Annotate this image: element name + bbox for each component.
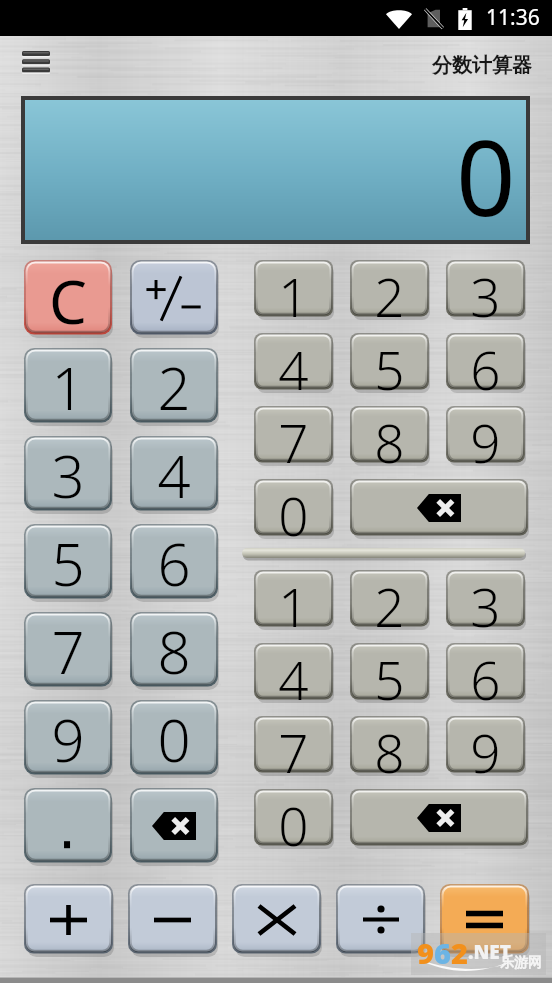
button[interactable]: 2 <box>130 348 218 424</box>
button[interactable]: 0 <box>130 700 218 776</box>
staticText: 8 <box>157 612 191 688</box>
button[interactable]: 0 <box>254 479 333 537</box>
staticText: 9 <box>417 933 434 972</box>
staticText: 3 <box>51 436 85 512</box>
button[interactable]: 9 <box>446 716 525 774</box>
staticText: 9 <box>470 716 501 774</box>
button[interactable]: Plus minus <box>130 260 218 336</box>
staticText: 3 <box>470 570 501 628</box>
staticText: 7 <box>278 406 309 464</box>
button[interactable]: Plus <box>24 884 113 955</box>
staticText: 4 <box>157 436 191 512</box>
staticText: 9 <box>51 700 85 776</box>
button[interactable]: Equals <box>440 884 529 955</box>
staticText: 1 <box>51 348 85 424</box>
button[interactable]: 9 <box>24 700 112 776</box>
button[interactable]: 5 <box>350 643 429 701</box>
button[interactable]: 8 <box>130 612 218 688</box>
staticText: 5 <box>374 333 405 391</box>
button[interactable]: 3 <box>24 436 112 512</box>
button[interactable]: 3 <box>446 260 525 318</box>
button[interactable]: 5 <box>350 333 429 391</box>
staticText: 0 <box>278 789 309 847</box>
button[interactable]: Delete <box>130 788 218 864</box>
button[interactable]: 4 <box>254 333 333 391</box>
staticText: 5 <box>374 643 405 701</box>
staticText: 11:36 <box>486 3 540 32</box>
button[interactable]: 6 <box>446 333 525 391</box>
staticText: 6 <box>157 524 191 600</box>
button[interactable]: 8 <box>350 716 429 774</box>
staticText: C <box>49 260 87 336</box>
button[interactable]: Delete <box>350 479 528 537</box>
button[interactable]: 7 <box>24 612 112 688</box>
button[interactable]: 6 <box>130 524 218 600</box>
staticText: 0 <box>157 700 191 776</box>
staticText: 2 <box>451 933 468 972</box>
staticText: 6 <box>470 333 501 391</box>
staticText: 8 <box>374 716 405 774</box>
button[interactable]: C <box>24 260 112 336</box>
staticText: 4 <box>278 643 309 701</box>
button[interactable]: 9 <box>446 406 525 464</box>
staticText: 0 <box>456 105 516 247</box>
button[interactable]: 6 <box>446 643 525 701</box>
staticText: 2 <box>374 570 405 628</box>
staticText: .NET <box>468 939 511 965</box>
staticText: 6 <box>470 643 501 701</box>
staticText: 6 <box>434 933 451 972</box>
staticText: 1 <box>278 570 309 628</box>
button[interactable]: 2 <box>350 260 429 318</box>
button[interactable]: 5 <box>24 524 112 600</box>
button[interactable]: 4 <box>130 436 218 512</box>
staticText: 4 <box>278 333 309 391</box>
staticText: 0 <box>278 479 309 537</box>
button[interactable]: 2 <box>350 570 429 628</box>
staticText: 3 <box>470 260 501 318</box>
button[interactable]: 1 <box>254 570 333 628</box>
staticText: 7 <box>51 612 85 688</box>
staticText: 8 <box>374 406 405 464</box>
button[interactable]: 4 <box>254 643 333 701</box>
staticText: 2 <box>157 348 191 424</box>
button[interactable]: Divide <box>336 884 425 955</box>
staticText: 9 <box>470 406 501 464</box>
button[interactable]: 7 <box>254 716 333 774</box>
button[interactable]: Multiply <box>232 884 321 955</box>
button[interactable]: Decimal point <box>24 788 112 864</box>
staticText: 2 <box>374 260 405 318</box>
button[interactable]: 8 <box>350 406 429 464</box>
staticText: 5 <box>51 524 85 600</box>
button[interactable]: Minus <box>128 884 217 955</box>
button[interactable]: Delete <box>350 789 528 847</box>
staticText: 乐游网 <box>500 954 542 972</box>
button[interactable]: 3 <box>446 570 525 628</box>
staticText: 1 <box>278 260 309 318</box>
button[interactable]: Menu <box>22 46 50 80</box>
staticText: 7 <box>278 716 309 774</box>
staticText: 分数计算器 <box>432 53 532 78</box>
button[interactable]: 0 <box>254 789 333 847</box>
button[interactable]: 1 <box>24 348 112 424</box>
button[interactable]: 7 <box>254 406 333 464</box>
button[interactable]: 1 <box>254 260 333 318</box>
